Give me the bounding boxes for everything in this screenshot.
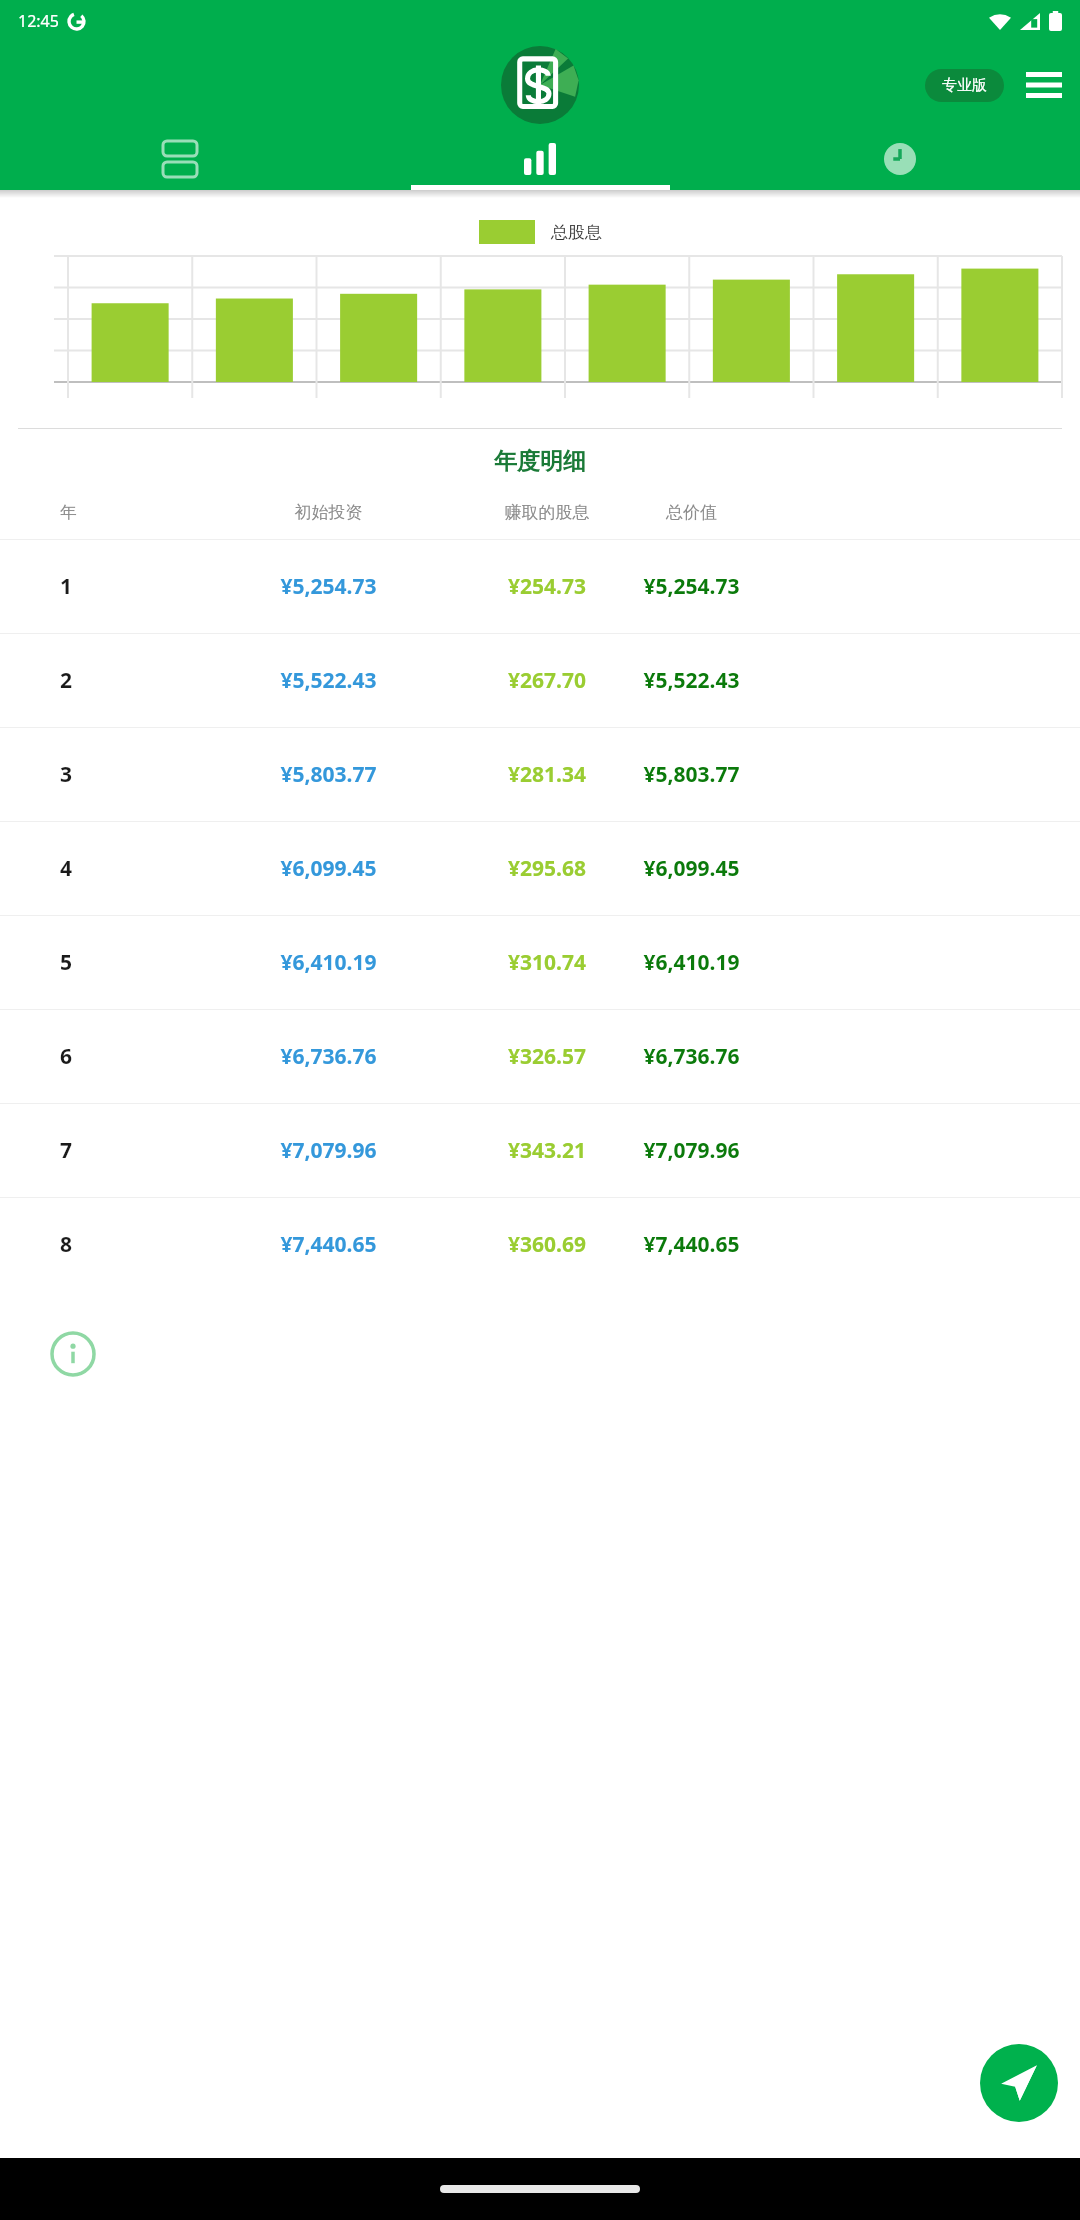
staticText: ¥7,440.65 bbox=[637, 1230, 746, 1259]
staticText: ¥7,079.96 bbox=[200, 1136, 457, 1165]
staticText: ¥5,803.77 bbox=[200, 760, 457, 789]
staticText: 1 bbox=[60, 572, 200, 601]
staticText: ¥326.57 bbox=[457, 1042, 637, 1071]
button[interactable]: 2 bbox=[0, 634, 1080, 727]
staticText: 年度明细 bbox=[0, 447, 1080, 476]
staticText: ¥6,410.19 bbox=[637, 948, 746, 977]
staticText: ¥7,079.96 bbox=[637, 1136, 746, 1165]
staticText: 4 bbox=[60, 854, 200, 883]
button[interactable]: Tab bbox=[720, 128, 1080, 190]
staticText: ¥5,254.73 bbox=[637, 572, 746, 601]
button[interactable]: 7 bbox=[0, 1104, 1080, 1197]
staticText: ¥267.70 bbox=[457, 666, 637, 695]
staticText: ¥310.74 bbox=[457, 948, 637, 977]
staticText: ¥7,440.65 bbox=[200, 1230, 457, 1259]
staticText: 7 bbox=[60, 1136, 200, 1165]
staticText: 5 bbox=[60, 948, 200, 977]
button[interactable]: 3 bbox=[0, 728, 1080, 821]
staticText: 总价值 bbox=[637, 502, 746, 523]
staticText: 初始投资 bbox=[200, 502, 457, 523]
staticText: ¥6,099.45 bbox=[200, 854, 457, 883]
staticText: 总股息 bbox=[551, 222, 602, 243]
button[interactable]: 专业版 bbox=[925, 69, 1004, 102]
button[interactable]: 6 bbox=[0, 1010, 1080, 1103]
staticText: 12:45 bbox=[18, 10, 59, 32]
button[interactable]: Tab bbox=[0, 128, 360, 190]
button[interactable]: 5 bbox=[0, 916, 1080, 1009]
staticText: 8 bbox=[60, 1230, 200, 1259]
staticText: ¥5,803.77 bbox=[637, 760, 746, 789]
button[interactable]: Menu bbox=[1024, 65, 1064, 105]
staticText: ¥254.73 bbox=[457, 572, 637, 601]
button[interactable]: 1 bbox=[0, 540, 1080, 633]
staticText: 专业版 bbox=[942, 76, 987, 95]
staticText: ¥6,736.76 bbox=[637, 1042, 746, 1071]
staticText: 赚取的股息 bbox=[457, 502, 637, 523]
button[interactable]: Chart tab bbox=[360, 128, 720, 190]
button[interactable]: Send bbox=[980, 2044, 1058, 2122]
staticText: ¥343.21 bbox=[457, 1136, 637, 1165]
staticText: ¥5,522.43 bbox=[637, 666, 746, 695]
staticText: ¥295.68 bbox=[457, 854, 637, 883]
button[interactable]: App logo bbox=[501, 46, 579, 124]
staticText: 3 bbox=[60, 760, 200, 789]
button[interactable]: Information bbox=[50, 1331, 96, 1377]
staticText: ¥281.34 bbox=[457, 760, 637, 789]
staticText: ¥5,254.73 bbox=[200, 572, 457, 601]
button[interactable]: 4 bbox=[0, 822, 1080, 915]
staticText: 6 bbox=[60, 1042, 200, 1071]
button[interactable]: 8 bbox=[0, 1198, 1080, 1291]
staticText: ¥5,522.43 bbox=[200, 666, 457, 695]
staticText: 年 bbox=[60, 502, 200, 523]
staticText: ¥6,410.19 bbox=[200, 948, 457, 977]
staticText: 2 bbox=[60, 666, 200, 695]
staticText: ¥6,736.76 bbox=[200, 1042, 457, 1071]
staticText: ¥6,099.45 bbox=[637, 854, 746, 883]
staticText: ¥360.69 bbox=[457, 1230, 637, 1259]
